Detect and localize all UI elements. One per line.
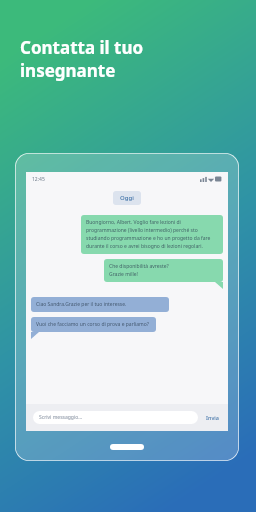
staticText: Invia	[206, 414, 219, 421]
staticText: Contatta il tuo	[20, 36, 144, 59]
button[interactable]: Vuoi che facciamo un corso di prova e pa…	[31, 317, 156, 332]
button[interactable]: Ciao Sandra.Grazie per il tuo interesse.	[31, 297, 169, 312]
staticText: Vuoi che facciamo un corso di prova e pa…	[36, 321, 149, 328]
button[interactable]: Scrivi messaggio...	[33, 411, 198, 424]
staticText: Ciao Sandra.Grazie per il tuo interesse.	[36, 301, 127, 308]
button[interactable]: Che disponibilità avreste? Grazie mille!	[104, 259, 223, 282]
button[interactable]: Invia	[204, 414, 221, 421]
staticText: insegnante	[20, 59, 116, 82]
staticText: Oggi	[120, 194, 134, 202]
button[interactable]: Buongiorno, Albert. Voglio fare lezioni …	[81, 215, 223, 254]
staticText: Buongiorno, Albert. Voglio fare lezioni …	[86, 219, 218, 250]
staticText: Che disponibilità avreste? Grazie mille!	[109, 263, 169, 278]
staticText: 12:45	[32, 176, 45, 183]
staticText: Scrivi messaggio...	[39, 414, 83, 421]
